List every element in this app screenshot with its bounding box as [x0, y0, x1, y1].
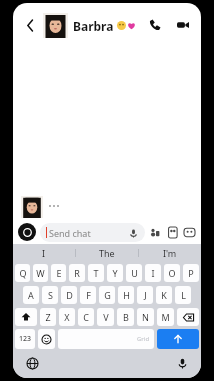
staticText: L [181, 289, 186, 301]
button[interactable]: Dictation [173, 354, 191, 372]
button[interactable]: U [126, 264, 142, 282]
button[interactable]: O [164, 264, 180, 282]
button[interactable]: 123 [15, 329, 35, 349]
staticText: R [74, 267, 80, 279]
button[interactable]: J [137, 286, 153, 304]
staticText: Send chat [49, 227, 91, 239]
button[interactable]: S [42, 286, 58, 304]
button[interactable]: D [61, 286, 77, 304]
staticText: I [42, 247, 46, 259]
staticText: J [144, 289, 147, 301]
button[interactable]: Games [182, 225, 196, 239]
button[interactable]: Call [143, 13, 167, 37]
staticText: D [66, 289, 73, 301]
button[interactable]: G [99, 286, 115, 304]
staticText: Q [19, 267, 27, 279]
button[interactable]: X [59, 308, 75, 326]
staticText: S [48, 289, 53, 301]
button[interactable]: R [69, 264, 85, 282]
button[interactable]: I'm [139, 244, 201, 262]
button[interactable]: E [51, 264, 66, 282]
button[interactable]: Shift [15, 308, 37, 326]
staticText: The [99, 247, 115, 259]
staticText: Z [45, 311, 51, 323]
button[interactable]: F [80, 286, 96, 304]
button[interactable]: P [183, 264, 199, 282]
staticText: Barbra [73, 18, 114, 34]
staticText: G [104, 289, 111, 301]
staticText: P [188, 267, 194, 279]
button[interactable]: Z [40, 308, 56, 326]
staticText: I'm [163, 247, 177, 259]
staticText: E [56, 267, 62, 279]
button[interactable]: I [145, 264, 161, 282]
button[interactable]: Send a Snap [148, 225, 162, 239]
button[interactable]: K [156, 286, 172, 304]
button[interactable]: I [13, 244, 75, 262]
button[interactable]: Voice message [127, 227, 139, 239]
staticText: W [36, 267, 45, 279]
staticText: I [151, 267, 155, 279]
button[interactable]: Barbra [43, 13, 143, 38]
button[interactable]: Emoji [38, 329, 55, 349]
staticText: H [123, 289, 130, 301]
button[interactable]: Stickers [165, 225, 179, 239]
staticText: F [86, 289, 91, 301]
button[interactable]: W [33, 264, 48, 282]
button[interactable]: Change keyboard [23, 354, 41, 372]
staticText: M [161, 311, 170, 323]
button[interactable]: V [97, 308, 114, 326]
staticText: 123 [19, 334, 32, 344]
button[interactable]: A [23, 286, 39, 304]
button[interactable]: H [118, 286, 134, 304]
button[interactable]: Grid [58, 329, 154, 349]
button[interactable]: Send [157, 329, 199, 349]
staticText: B [123, 311, 129, 323]
button[interactable]: M [157, 308, 174, 326]
staticText: K [161, 289, 167, 301]
staticText: V [103, 311, 109, 323]
staticText: O [168, 267, 176, 279]
button[interactable]: Backspace [177, 308, 199, 326]
staticText: Y [112, 267, 118, 279]
staticText: U [131, 267, 138, 279]
button[interactable]: The [76, 244, 138, 262]
button[interactable]: C [78, 308, 94, 326]
button[interactable]: Q [15, 264, 30, 282]
staticText: Grid [137, 335, 150, 343]
button[interactable]: T [88, 264, 104, 282]
button[interactable]: N [137, 308, 154, 326]
staticText: C [83, 311, 89, 323]
button[interactable]: Back [19, 14, 41, 36]
button[interactable]: L [175, 286, 191, 304]
button[interactable]: Video call [171, 13, 195, 37]
staticText: A [28, 289, 34, 301]
button[interactable]: Send chat [40, 223, 145, 242]
button[interactable]: B [117, 308, 134, 326]
button[interactable]: Camera [18, 223, 36, 241]
staticText: N [142, 311, 149, 323]
button[interactable]: Y [107, 264, 123, 282]
staticText: T [93, 267, 99, 279]
staticText: X [64, 311, 70, 323]
